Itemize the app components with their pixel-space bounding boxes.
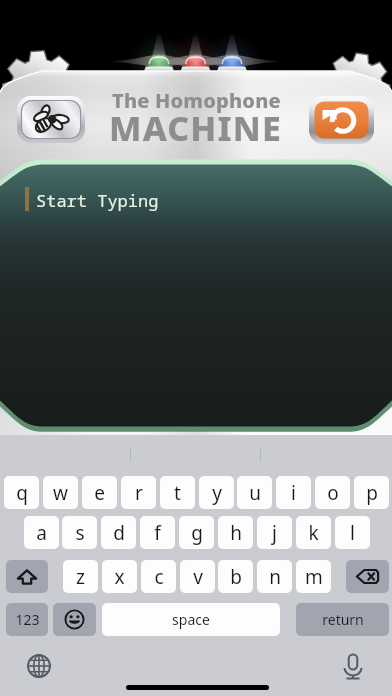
button[interactable]: q	[4, 476, 39, 509]
staticText: a	[36, 520, 47, 546]
staticText: g	[191, 520, 203, 546]
button[interactable]: l	[335, 516, 370, 549]
staticText: v	[193, 564, 203, 590]
button[interactable]: n	[257, 560, 292, 593]
staticText: w	[53, 480, 68, 506]
staticText: n	[269, 564, 281, 590]
button[interactable]: y	[199, 476, 234, 509]
button[interactable]: a	[24, 516, 59, 549]
staticText: z	[76, 564, 85, 590]
button[interactable]: return	[296, 603, 389, 636]
button[interactable]: space	[102, 603, 280, 636]
button[interactable]: p	[354, 476, 389, 509]
staticText: space	[172, 610, 210, 629]
button[interactable]: b	[218, 560, 253, 593]
button[interactable]: Shift	[6, 560, 48, 593]
staticText: r	[135, 480, 143, 506]
button[interactable]: o	[315, 476, 350, 509]
button[interactable]: Emoji	[53, 603, 96, 636]
staticText: e	[94, 480, 105, 506]
button[interactable]: 123	[6, 603, 48, 636]
staticText: q	[16, 480, 28, 506]
staticText: l	[350, 520, 355, 546]
button[interactable]: w	[43, 476, 78, 509]
staticText: o	[327, 480, 339, 506]
staticText: p	[366, 480, 378, 506]
button[interactable]: Reset	[309, 96, 374, 144]
button[interactable]: f	[140, 516, 175, 549]
staticText: s	[75, 520, 85, 546]
button[interactable]: h	[218, 516, 253, 549]
staticText: return	[322, 610, 364, 629]
button[interactable]: t	[160, 476, 195, 509]
button[interactable]: m	[296, 560, 331, 593]
button[interactable]: z	[63, 560, 98, 593]
button[interactable]: d	[101, 516, 136, 549]
button[interactable]: Backspace	[346, 560, 389, 593]
button[interactable]: j	[257, 516, 292, 549]
staticText: MACHINE	[109, 105, 283, 151]
staticText: h	[230, 520, 242, 546]
staticText: f	[154, 520, 161, 546]
button[interactable]: u	[237, 476, 272, 509]
staticText: t	[174, 480, 181, 506]
staticText: x	[114, 564, 125, 590]
staticText: i	[291, 480, 296, 506]
button[interactable]: Bee	[17, 96, 85, 143]
button[interactable]: v	[180, 560, 215, 593]
button[interactable]: e	[82, 476, 117, 509]
button[interactable]: g	[179, 516, 214, 549]
staticText: j	[272, 520, 277, 546]
staticText: k	[308, 520, 319, 546]
staticText: c	[154, 564, 164, 590]
button[interactable]: Dictate	[341, 654, 365, 678]
staticText: u	[249, 480, 261, 506]
button[interactable]: Switch keyboard	[27, 654, 51, 678]
button[interactable]: x	[102, 560, 137, 593]
button[interactable]: s	[62, 516, 97, 549]
button[interactable]: k	[296, 516, 331, 549]
button[interactable]: c	[141, 560, 176, 593]
staticText: m	[305, 564, 323, 590]
staticText: d	[113, 520, 125, 546]
button[interactable]: r	[121, 476, 156, 509]
staticText: y	[212, 480, 222, 506]
button[interactable]: i	[276, 476, 311, 509]
staticText: 123	[15, 610, 40, 629]
staticText: b	[230, 564, 242, 590]
staticText: Start Typing	[36, 189, 159, 212]
staticText: The Homophone	[112, 87, 281, 114]
